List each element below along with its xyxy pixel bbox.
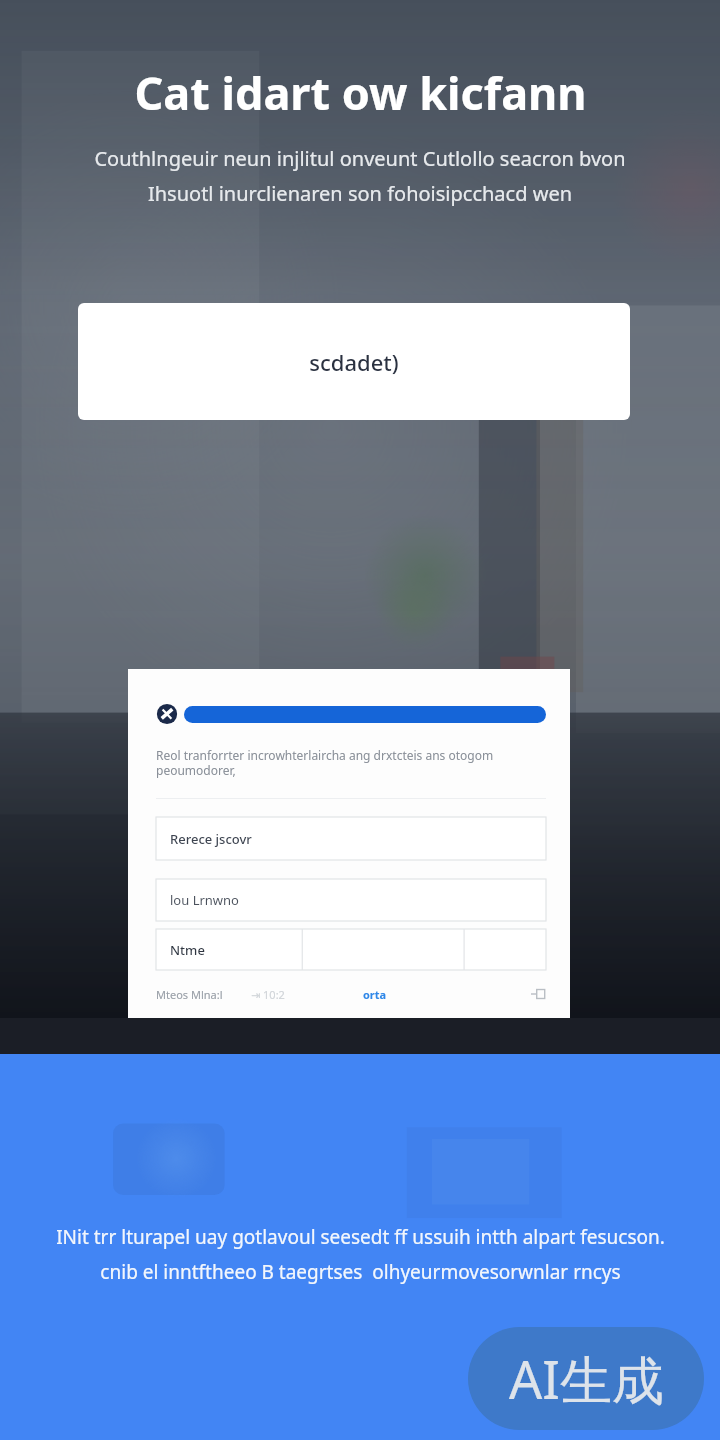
staticText: AI生成 <box>509 1343 664 1414</box>
button[interactable]: AI生成 <box>468 1327 704 1430</box>
staticText: Rerece jscovr <box>170 830 252 848</box>
button[interactable]: orta <box>363 987 387 1002</box>
staticText: Ntme <box>170 941 205 959</box>
staticText: scdadet) <box>309 347 399 377</box>
button[interactable]: lou Lrnwno <box>156 879 546 921</box>
button[interactable]: Rerece jscovr <box>156 817 546 860</box>
staticText: INit trr lturapel uay gotlavoul seesedt … <box>56 1224 665 1284</box>
button[interactable]: Mteos Mlna:l <box>156 987 223 1002</box>
staticText: lou Lrnwno <box>170 891 239 909</box>
other: Logo <box>156 703 178 725</box>
button[interactable]: Open <box>530 986 546 1002</box>
button[interactable]: ⇥ 10:2 <box>251 987 285 1002</box>
staticText: Reol tranforrter incrowhterlaircha ang d… <box>156 747 548 778</box>
staticText: Cat idart ow kicfann <box>134 62 587 123</box>
button[interactable]: scdadet) <box>78 303 630 420</box>
staticText: Couthlngeuir neun injlitul onveunt Cutlo… <box>94 145 626 207</box>
button[interactable]: Ntme <box>156 929 546 970</box>
